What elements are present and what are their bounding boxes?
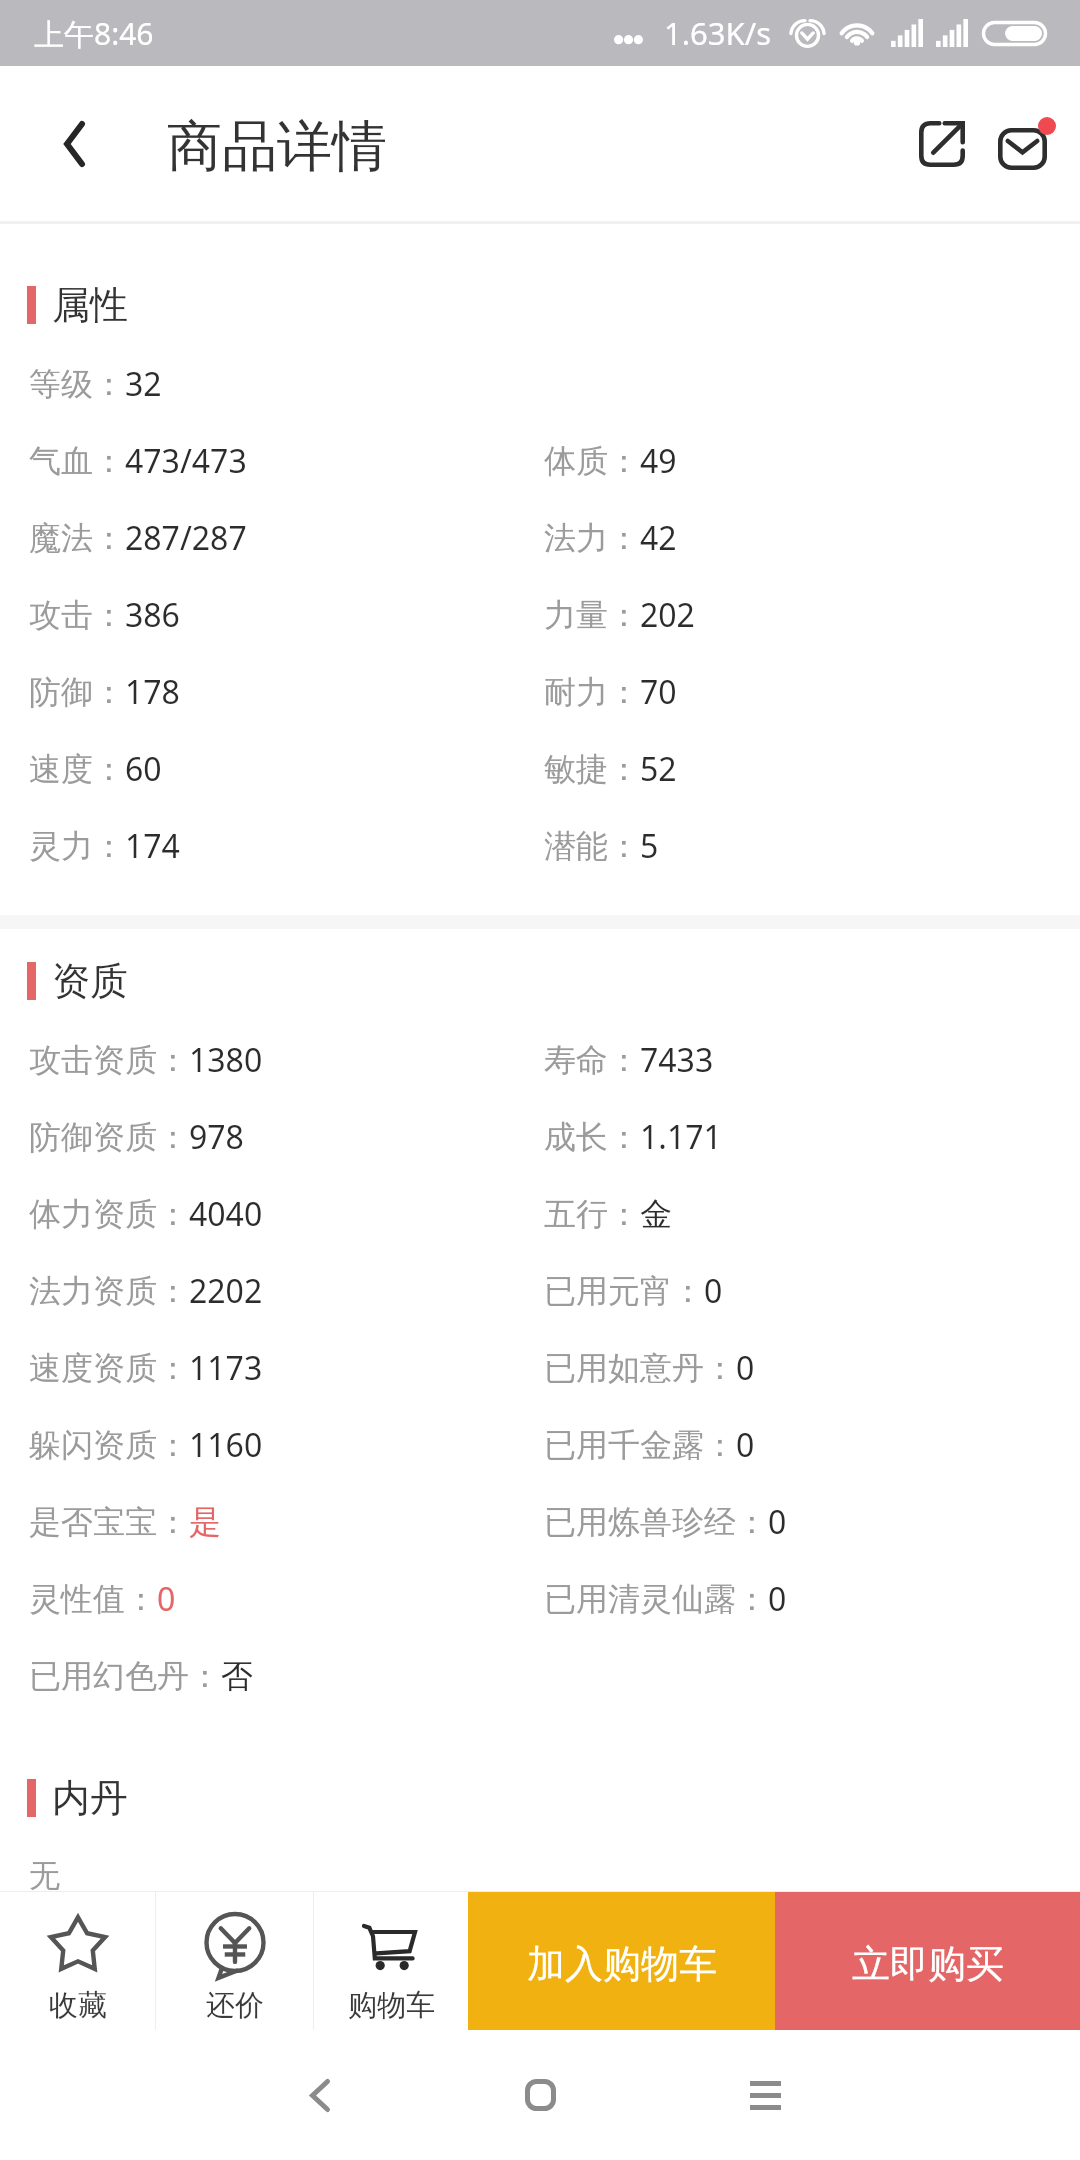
staticText: 商品详情 — [167, 112, 387, 181]
staticText: 寿命： — [544, 1040, 640, 1080]
staticText: 70 — [640, 670, 677, 714]
staticText: 法力资质： — [29, 1271, 189, 1311]
staticText: 攻击： — [29, 595, 125, 635]
staticText: 力量： — [544, 595, 640, 635]
staticText: 攻击资质： — [29, 1040, 189, 1080]
staticText: 上午8:46 — [34, 13, 154, 54]
staticText: 49 — [640, 439, 677, 483]
button[interactable]: Share — [898, 66, 986, 221]
staticText: 等级： — [29, 364, 125, 404]
staticText: 还价 — [206, 1987, 264, 2024]
staticText: 已用清灵仙露： — [544, 1579, 768, 1619]
staticText: 0 — [157, 1577, 176, 1621]
staticText: 五行： — [544, 1194, 640, 1234]
staticText: 收藏 — [49, 1987, 107, 2024]
staticText: 金 — [640, 1194, 672, 1234]
staticText: 速度资质： — [29, 1348, 189, 1388]
staticText: 178 — [125, 670, 180, 714]
staticText: 资质 — [52, 957, 128, 1005]
staticText: 7433 — [640, 1038, 714, 1082]
staticText: 52 — [640, 747, 677, 791]
staticText: 1380 — [189, 1038, 263, 1082]
staticText: 1173 — [189, 1346, 263, 1390]
button[interactable]: 收藏 — [0, 1892, 155, 2030]
staticText: 0 — [768, 1577, 787, 1621]
staticText: 4040 — [189, 1192, 263, 1236]
button[interactable]: Back — [0, 66, 148, 221]
staticText: 1.171 — [640, 1115, 722, 1159]
staticText: 32 — [125, 362, 162, 406]
staticText: 是否宝宝： — [29, 1502, 189, 1542]
staticText: 体力资质： — [29, 1194, 189, 1234]
button[interactable]: 立即购买 — [775, 1892, 1080, 2030]
button[interactable]: Home — [485, 2040, 595, 2150]
staticText: 购物车 — [348, 1987, 435, 2024]
button[interactable]: 还价 — [156, 1892, 313, 2030]
button[interactable]: Back — [265, 2040, 375, 2150]
staticText: 灵性值： — [29, 1579, 157, 1619]
staticText: 属性 — [52, 281, 128, 329]
staticText: 气血： — [29, 441, 125, 481]
staticText: 否 — [221, 1656, 253, 1696]
staticText: 978 — [189, 1115, 244, 1159]
staticText: 386 — [125, 593, 180, 637]
staticText: 灵力： — [29, 826, 125, 866]
staticText: 防御： — [29, 672, 125, 712]
staticText: 魔法： — [29, 518, 125, 558]
staticText: 60 — [125, 747, 162, 791]
staticText: 0 — [736, 1346, 755, 1390]
staticText: 0 — [736, 1423, 755, 1467]
staticText: 287/287 — [125, 516, 247, 560]
staticText: 174 — [125, 824, 180, 868]
staticText: 速度： — [29, 749, 125, 789]
staticText: 已用幻色丹： — [29, 1656, 221, 1696]
staticText: 敏捷： — [544, 749, 640, 789]
button[interactable]: Messages — [983, 66, 1071, 221]
button[interactable]: Menu — [710, 2040, 820, 2150]
staticText: 法力： — [544, 518, 640, 558]
staticText: 内丹 — [52, 1774, 128, 1822]
staticText: 5 — [640, 824, 659, 868]
staticText: 潜能： — [544, 826, 640, 866]
staticText: 立即购买 — [852, 1940, 1004, 1988]
staticText: 无 — [29, 1856, 60, 1891]
staticText: 防御资质： — [29, 1117, 189, 1157]
staticText: 42 — [640, 516, 677, 560]
staticText: 耐力： — [544, 672, 640, 712]
button[interactable]: 购物车 — [314, 1892, 468, 2030]
staticText: 是 — [189, 1502, 221, 1542]
staticText: 成长： — [544, 1117, 640, 1157]
staticText: 已用千金露： — [544, 1425, 736, 1465]
staticText: 已用如意丹： — [544, 1348, 736, 1388]
staticText: 473/473 — [125, 439, 247, 483]
staticText: 体质： — [544, 441, 640, 481]
staticText: 0 — [768, 1500, 787, 1544]
staticText: 躲闪资质： — [29, 1425, 189, 1465]
staticText: 1160 — [189, 1423, 263, 1467]
staticText: 1.63K/s — [664, 12, 772, 54]
staticText: 已用元宵： — [544, 1271, 704, 1311]
button[interactable]: 加入购物车 — [468, 1892, 775, 2030]
staticText: 2202 — [189, 1269, 263, 1313]
staticText: 202 — [640, 593, 695, 637]
staticText: 0 — [704, 1269, 723, 1313]
staticText: 已用炼兽珍经： — [544, 1502, 768, 1542]
staticText: 加入购物车 — [527, 1940, 717, 1988]
